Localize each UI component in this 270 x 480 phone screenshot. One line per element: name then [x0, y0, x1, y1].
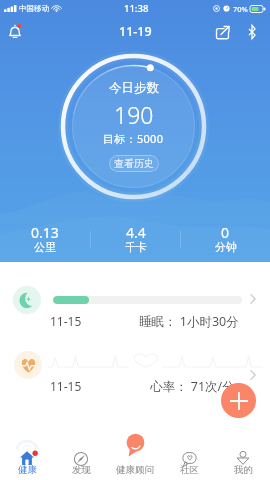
staticText: 健康顾问 — [116, 464, 154, 476]
staticText: 心率： 71次/分 — [150, 378, 235, 395]
button[interactable]: Add record — [221, 383, 256, 418]
staticText: 11-19 — [119, 23, 152, 40]
button[interactable]: 11-15 — [0, 262, 270, 330]
button[interactable]: 4.4 — [91, 223, 180, 255]
staticText: 睡眠： 1小时30分 — [139, 313, 239, 330]
button[interactable]: 查看历史 — [109, 155, 159, 172]
staticText: 11-15 — [50, 378, 82, 394]
staticText: 11:38 — [124, 2, 149, 15]
button[interactable]: 社区 — [162, 418, 216, 480]
button[interactable]: 健康顾问 — [108, 418, 162, 480]
staticText: 4.4 — [126, 223, 146, 242]
staticText: 分钟 — [215, 240, 237, 253]
staticText: 健康 — [18, 464, 37, 476]
button[interactable]: Share — [210, 21, 234, 45]
staticText: 社区 — [180, 464, 199, 476]
staticText: 0 — [221, 223, 230, 242]
staticText: 查看历史 — [114, 157, 154, 170]
button[interactable]: 我的 — [216, 418, 270, 480]
staticText: 今日步数 — [109, 80, 159, 96]
staticText: 中国移动 — [19, 4, 49, 13]
button[interactable]: Bluetooth — [241, 22, 263, 44]
button[interactable]: 发现 — [54, 418, 108, 480]
button[interactable]: 0 — [181, 223, 270, 255]
button[interactable]: 0.13 — [0, 223, 90, 255]
button[interactable]: 健康 — [0, 418, 54, 480]
staticText: 190 — [114, 99, 154, 130]
staticText: 发现 — [72, 464, 91, 476]
staticText: 我的 — [234, 464, 253, 476]
staticText: 千卡 — [125, 240, 147, 253]
button[interactable]: 11-15 — [0, 330, 270, 398]
staticText: 公里 — [34, 240, 56, 253]
staticText: 70% — [233, 4, 248, 14]
button[interactable]: Notifications — [2, 19, 28, 45]
staticText: 0.13 — [31, 223, 59, 242]
staticText: 目标：5000 — [103, 131, 164, 146]
staticText: 11-15 — [50, 313, 82, 329]
